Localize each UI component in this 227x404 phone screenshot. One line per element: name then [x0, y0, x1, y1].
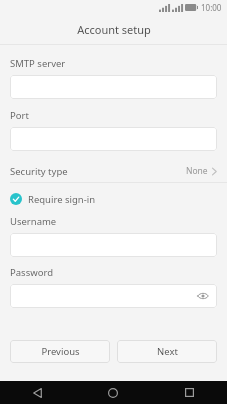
button[interactable]: Previous: [10, 340, 110, 363]
button[interactable]: [10, 127, 217, 151]
button[interactable]: Show password: [10, 284, 217, 308]
button[interactable]: Show password: [195, 288, 211, 304]
staticText: Password: [10, 266, 53, 279]
staticText: Account setup: [77, 22, 151, 37]
button[interactable]: [10, 233, 217, 257]
button[interactable]: [10, 75, 217, 99]
button[interactable]: Home: [75, 381, 151, 404]
button[interactable]: Back: [0, 381, 75, 404]
staticText: None: [186, 165, 208, 177]
staticText: 10:00: [201, 2, 222, 13]
button[interactable]: Next: [117, 340, 217, 363]
staticText: Port: [10, 109, 29, 122]
button[interactable]: Security type: [0, 160, 227, 182]
button[interactable]: Recents: [151, 381, 227, 404]
staticText: Username: [10, 215, 57, 228]
staticText: Previous: [41, 345, 80, 358]
staticText: Next: [157, 345, 178, 358]
staticText: Security type: [10, 165, 68, 178]
staticText: SMTP server: [10, 57, 66, 70]
staticText: Require sign-in: [28, 193, 96, 206]
button[interactable]: Require sign-in: [0, 190, 227, 208]
